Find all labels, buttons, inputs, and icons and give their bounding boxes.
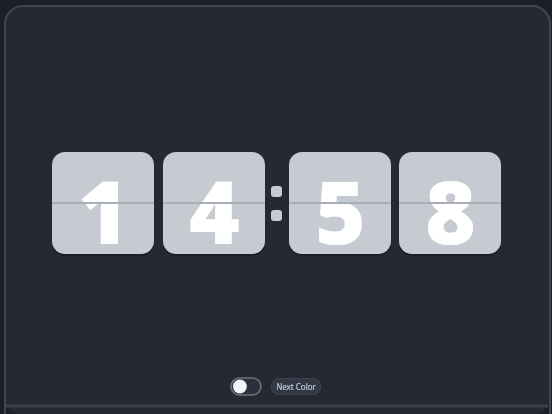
staticText: 1: [78, 152, 129, 254]
staticText: 4: [189, 152, 240, 254]
button[interactable]: 8: [399, 152, 501, 254]
staticText: Next Color: [276, 381, 316, 392]
staticText: 5: [315, 152, 366, 254]
button[interactable]: 5: [289, 152, 391, 254]
button[interactable]: 1: [52, 152, 154, 254]
staticText: 8: [425, 152, 476, 254]
button[interactable]: Next Color: [271, 378, 321, 395]
button[interactable]: Toggle: [231, 378, 261, 395]
button[interactable]: 4: [163, 152, 265, 254]
